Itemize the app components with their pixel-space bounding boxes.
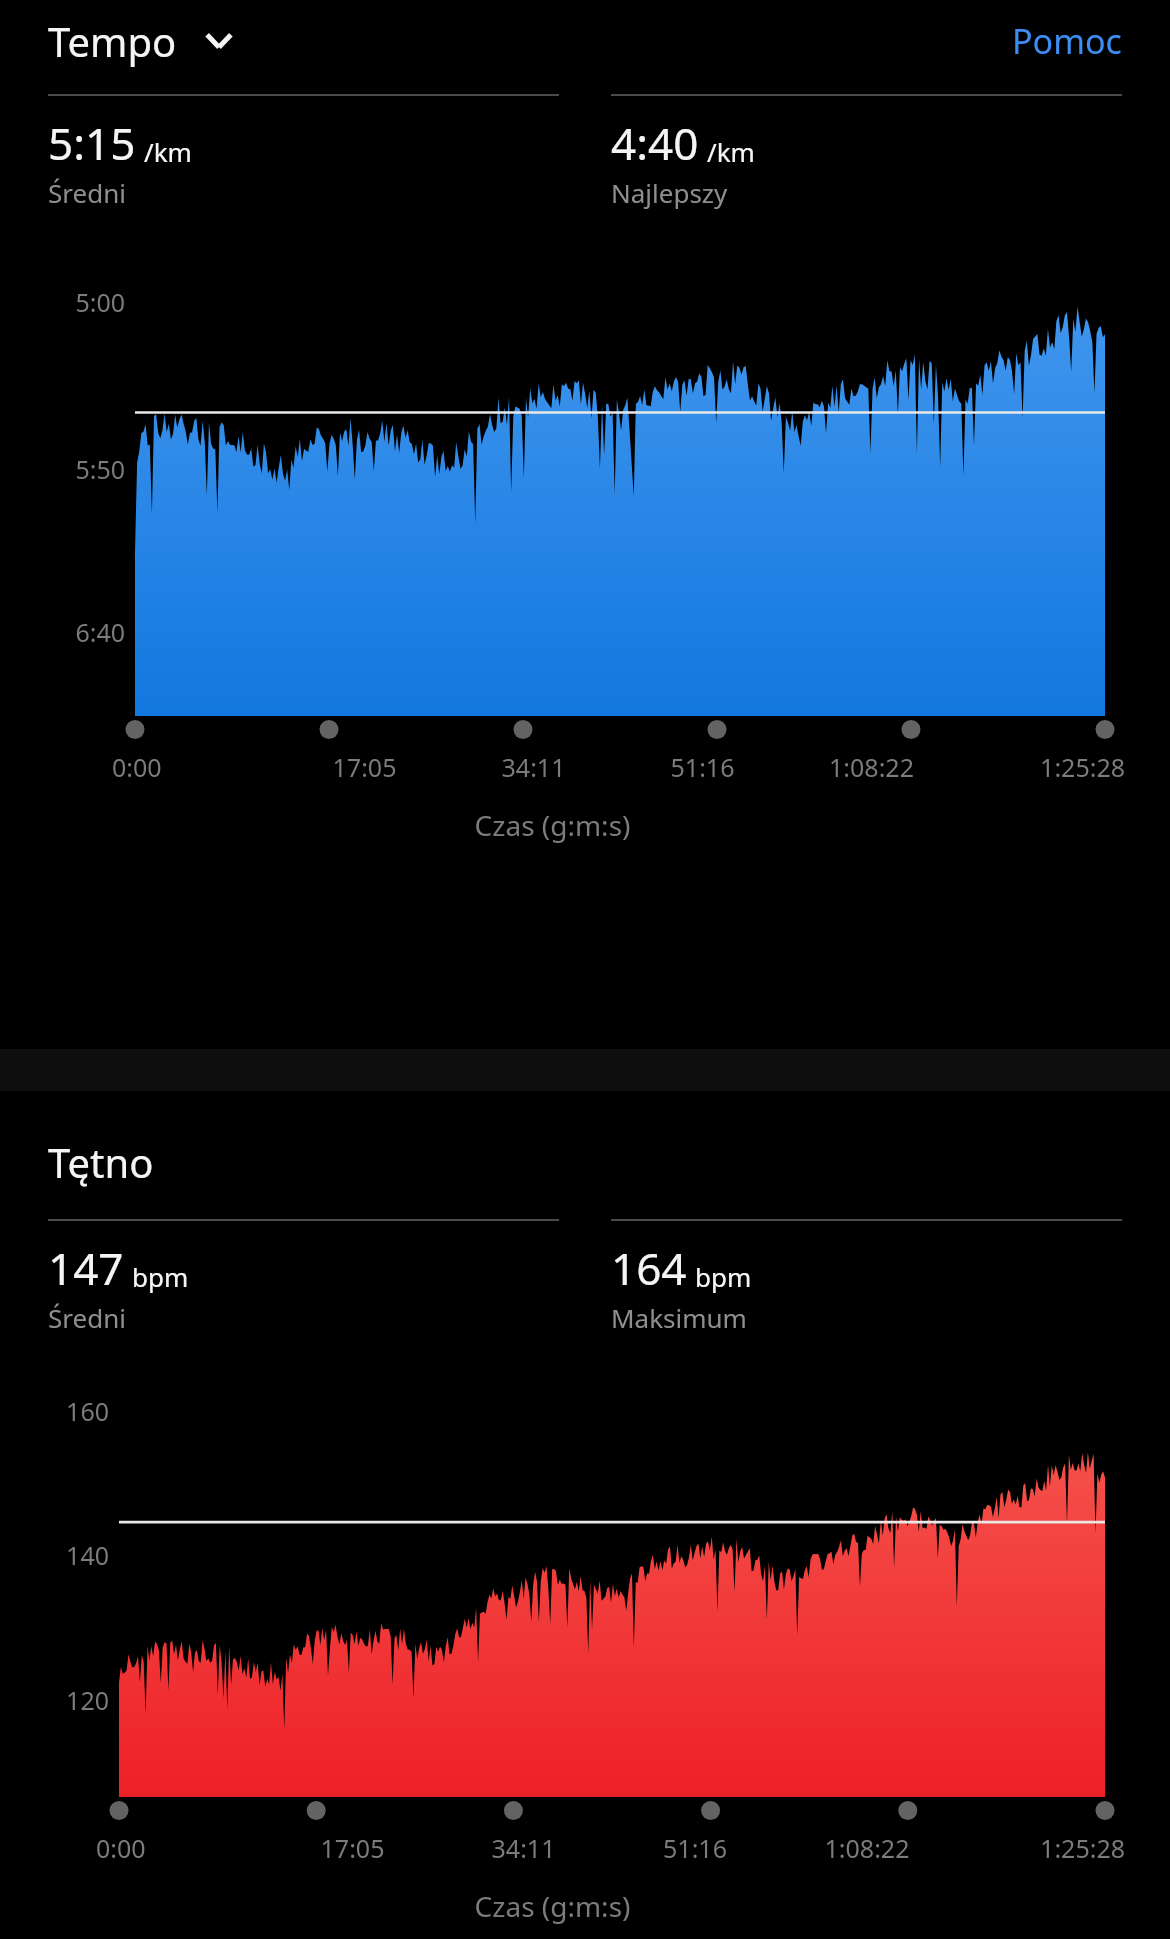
staticText: 1:25:28 [953,1831,1125,1865]
staticText: 51:16 [618,750,787,784]
staticText: 17:05 [280,750,449,784]
staticText: 34:11 [438,1831,609,1865]
button[interactable]: 147 [48,1219,559,1335]
other: Change metric [197,19,241,63]
staticText: 34:11 [449,750,618,784]
staticText: 1:08:22 [781,1831,953,1865]
staticText: Czas (g:m:s) [0,1887,1105,1925]
staticText: 51:16 [609,1831,781,1865]
staticText: 160 [0,1394,109,1428]
staticText: Tętno [48,1135,154,1189]
staticText: Tempo [48,14,177,68]
staticText: bpm [132,1259,189,1294]
staticText: 1:08:22 [787,750,956,784]
button[interactable]: Pomoc [1012,18,1122,64]
staticText: 147 [48,1238,124,1298]
staticText: Czas (g:m:s) [0,806,1105,844]
staticText: 5:00 [0,285,125,319]
staticText: Pomoc [1012,18,1122,64]
button[interactable]: 164 [611,1219,1122,1335]
staticText: 5:50 [0,452,125,486]
staticText: /km [707,134,755,169]
staticText: 6:40 [0,615,125,649]
staticText: 140 [0,1538,109,1572]
button[interactable]: 4:40 [611,94,1122,210]
staticText: 17:05 [267,1831,438,1865]
staticText: 0:00 [112,750,280,784]
button[interactable]: 5:15 [48,94,559,210]
staticText: 120 [0,1683,109,1717]
button[interactable]: Tempo [48,14,241,68]
staticText: Maksimum [611,1300,747,1335]
staticText: 5:15 [48,113,136,173]
staticText: Średni [48,1300,126,1335]
staticText: 164 [611,1238,687,1298]
staticText: bpm [695,1259,752,1294]
staticText: Średni [48,175,126,210]
staticText: 4:40 [611,113,699,173]
staticText: Najlepszy [611,175,728,210]
staticText: 1:25:28 [956,750,1125,784]
staticText: 0:00 [96,1831,267,1865]
staticText: /km [144,134,192,169]
